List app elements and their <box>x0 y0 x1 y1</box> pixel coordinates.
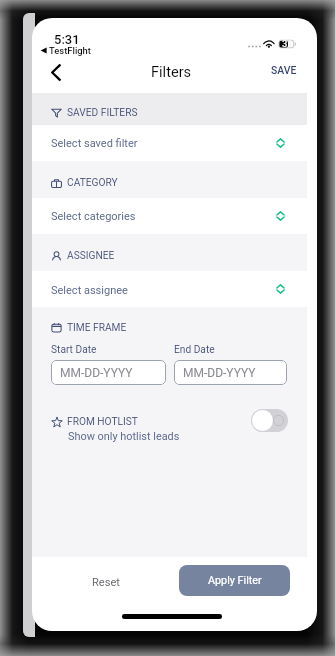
button[interactable]: MM-DD-YYYY <box>174 360 287 385</box>
staticText: Select assignee <box>51 284 128 297</box>
staticText: SAVE <box>271 64 297 76</box>
staticText: 31 <box>282 38 293 49</box>
button[interactable]: Select saved filter <box>32 125 307 160</box>
staticText: Start Date <box>51 344 97 356</box>
button[interactable]: MM-DD-YYYY <box>51 360 166 385</box>
staticText: TestFlight <box>49 45 91 56</box>
button[interactable]: ASSIGNEE <box>32 237 307 275</box>
staticText: ASSIGNEE <box>67 250 115 262</box>
staticText: MM-DD-YYYY <box>183 366 256 380</box>
staticText: 5:31 <box>54 32 80 47</box>
staticText: Filters <box>151 63 192 80</box>
staticText: MM-DD-YYYY <box>60 366 133 380</box>
button[interactable]: Show only hotlist leads toggle <box>251 409 288 432</box>
button[interactable]: Back <box>41 57 71 87</box>
staticText: Show only hotlist leads <box>68 430 180 443</box>
staticText: TIME FRAME <box>67 322 127 334</box>
button[interactable]: Select assignee <box>32 271 307 307</box>
button[interactable]: SAVE <box>260 59 308 81</box>
button[interactable]: SAVED FILTERS <box>32 96 307 129</box>
staticText: Apply Filter <box>208 574 262 587</box>
staticText: Select saved filter <box>51 137 138 150</box>
staticText: Select categories <box>51 210 136 223</box>
staticText: CATEGORY <box>67 177 118 189</box>
button[interactable]: Reset <box>76 567 136 597</box>
staticText: SAVED FILTERS <box>67 107 138 119</box>
staticText: FROM HOTLIST <box>67 416 138 428</box>
button[interactable]: Select categories <box>32 198 307 233</box>
button[interactable]: CATEGORY <box>32 164 307 202</box>
staticText: End Date <box>174 344 215 356</box>
button[interactable]: Apply Filter <box>179 565 290 596</box>
staticText: Reset <box>92 576 120 589</box>
